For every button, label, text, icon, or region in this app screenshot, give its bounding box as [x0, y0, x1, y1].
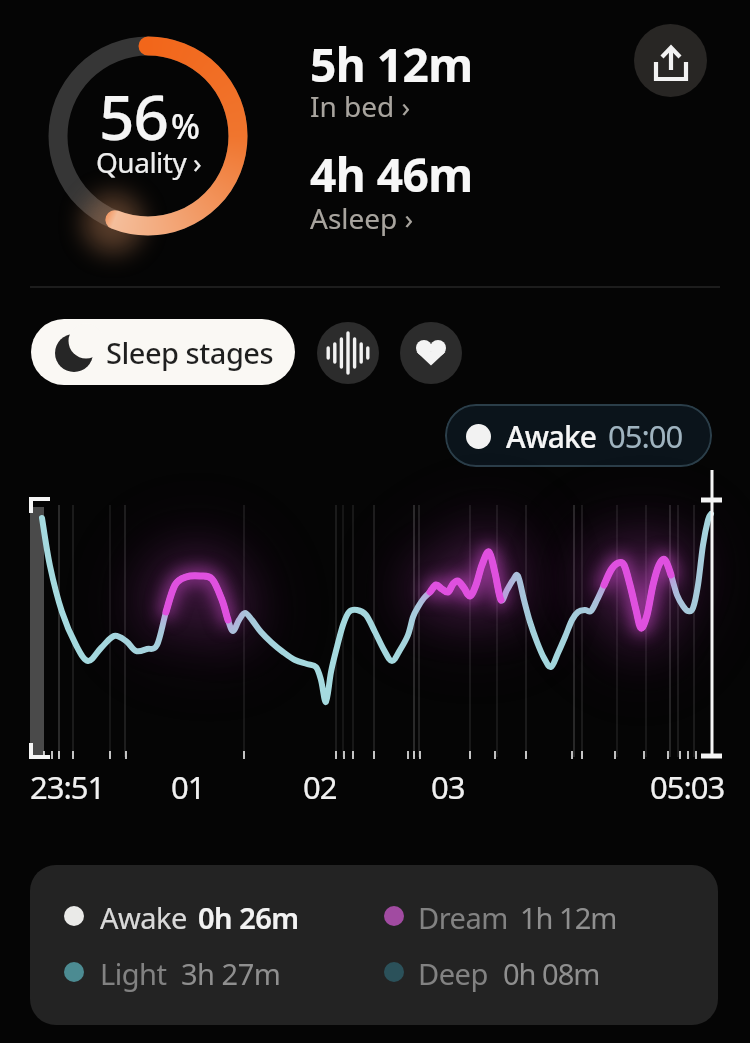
staticText: 02 — [303, 766, 337, 808]
staticText: Awake — [506, 416, 597, 457]
staticText: % — [171, 103, 200, 149]
staticText: 4h 46m — [310, 143, 473, 206]
button[interactable] — [317, 322, 379, 384]
staticText: Dream — [418, 898, 508, 937]
staticText: 56 — [99, 74, 168, 158]
button[interactable] — [400, 322, 462, 384]
staticText: Awake — [100, 898, 187, 937]
staticText: 23:51 — [30, 766, 105, 808]
staticText: 0h 26m — [198, 898, 299, 937]
button[interactable]: Awake — [445, 404, 712, 467]
staticText: 05:00 — [608, 415, 683, 457]
staticText: 0h 08m — [503, 954, 600, 993]
staticText: 5h 12m — [310, 33, 473, 96]
staticText: Deep — [418, 954, 488, 993]
staticText: Quality › — [96, 143, 202, 181]
staticText: Sleep stages — [106, 333, 274, 372]
staticText: 3h 27m — [181, 954, 281, 993]
staticText: In bed › — [310, 87, 411, 125]
button[interactable]: Sleep stages — [31, 319, 295, 385]
staticText: Light — [100, 954, 167, 993]
button[interactable] — [634, 24, 707, 97]
staticText: Asleep › — [310, 199, 414, 237]
staticText: 03 — [431, 766, 465, 808]
button[interactable]: 56 — [43, 31, 253, 241]
staticText: 05:03 — [650, 766, 725, 808]
staticText: 1h 12m — [520, 898, 617, 937]
staticText: 01 — [171, 766, 205, 808]
